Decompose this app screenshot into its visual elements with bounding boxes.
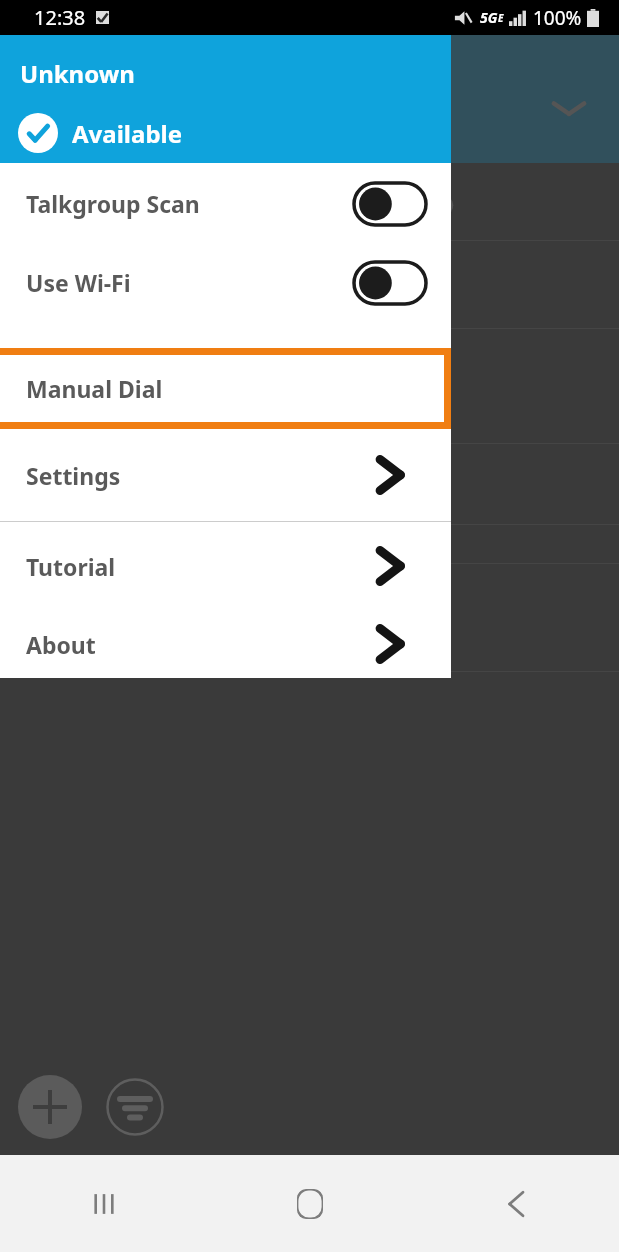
staticText: 100%	[533, 5, 582, 31]
staticText: Tutorial	[26, 551, 116, 582]
staticText: Use Wi-Fi	[26, 267, 131, 298]
staticText: 12:38	[34, 4, 86, 31]
button[interactable]: Tutorial	[0, 522, 451, 610]
staticText: Settings	[26, 460, 121, 491]
staticText: Available	[72, 117, 183, 150]
button[interactable]: Add	[18, 1075, 82, 1139]
button[interactable]: Recent apps	[0, 1155, 207, 1252]
staticText: About	[26, 629, 96, 660]
staticText: 5G	[480, 8, 498, 27]
staticText: E	[498, 11, 504, 25]
button[interactable]: Manual Dial	[0, 355, 444, 422]
button[interactable]: Collapse	[541, 81, 597, 137]
button[interactable]: Tim Smith	[0, 564, 619, 671]
button[interactable]: Back	[413, 1155, 619, 1252]
button[interactable]: Map	[392, 166, 464, 238]
button[interactable]: Use Wi-Fi	[0, 244, 451, 321]
button[interactable]: Filter	[106, 1078, 164, 1136]
button[interactable]: Available	[18, 113, 183, 153]
button[interactable]: Home	[207, 1155, 413, 1252]
staticText: Unknown	[20, 57, 135, 90]
staticText: Talkgroup Scan	[26, 188, 200, 219]
button[interactable]: About	[0, 610, 451, 678]
staticText: Manual Dial	[26, 373, 163, 404]
button[interactable]: Talkgroup Scan	[0, 163, 451, 244]
button[interactable]: Settings	[0, 429, 451, 521]
button[interactable]: Search	[398, 253, 462, 317]
